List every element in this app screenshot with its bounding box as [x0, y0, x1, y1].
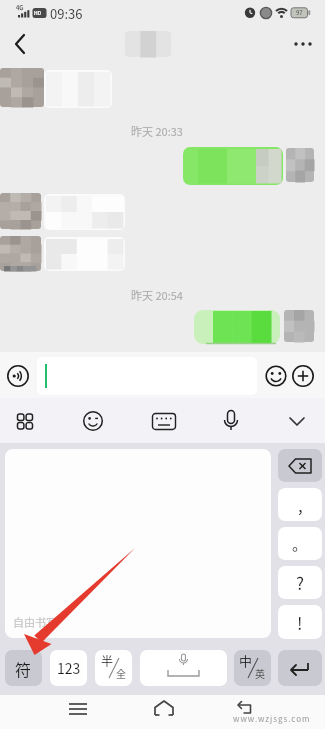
staticText: 。 — [292, 533, 308, 555]
staticText: 97 — [296, 8, 303, 17]
staticText: 123 — [57, 658, 81, 678]
button[interactable] — [5, 449, 271, 638]
staticText: 4G — [16, 3, 24, 12]
button[interactable] — [283, 409, 311, 433]
button[interactable] — [278, 650, 322, 686]
staticText: www.wzjsgs.com — [233, 713, 311, 725]
staticText: 符 — [15, 657, 32, 680]
staticText: HD — [34, 9, 42, 16]
button[interactable] — [290, 32, 318, 56]
button[interactable] — [150, 407, 178, 435]
button[interactable] — [37, 357, 257, 395]
staticText: 中 — [239, 651, 253, 670]
button[interactable] — [278, 449, 322, 482]
button[interactable] — [265, 365, 287, 387]
button[interactable] — [6, 364, 30, 388]
staticText: 半 — [101, 652, 114, 669]
staticText: 全 — [116, 666, 126, 680]
staticText: 自由书写 — [13, 614, 57, 630]
button[interactable]: ? — [278, 566, 322, 599]
button[interactable] — [11, 407, 39, 435]
button[interactable]: 123 — [50, 650, 87, 686]
staticText: ? — [296, 570, 305, 595]
button[interactable]: , — [278, 488, 322, 521]
button[interactable]: ! — [278, 605, 322, 639]
staticText: 英 — [255, 666, 265, 680]
button[interactable] — [64, 698, 92, 722]
button[interactable] — [292, 365, 314, 387]
button[interactable] — [150, 698, 178, 722]
button[interactable]: 。 — [278, 527, 322, 560]
button[interactable] — [217, 406, 245, 436]
button[interactable] — [6, 30, 34, 58]
button[interactable]: 符 — [5, 650, 42, 686]
button[interactable] — [140, 650, 227, 686]
button[interactable]: 中 — [234, 650, 271, 686]
staticText: , — [298, 492, 303, 517]
button[interactable] — [79, 407, 107, 435]
staticText: 09:36 — [50, 4, 83, 23]
button[interactable] — [231, 698, 259, 722]
button[interactable]: 半 — [95, 650, 132, 686]
staticText: 昨天 20:54 — [131, 287, 183, 303]
staticText: ! — [297, 610, 303, 635]
staticText: 昨天 20:33 — [131, 123, 183, 139]
